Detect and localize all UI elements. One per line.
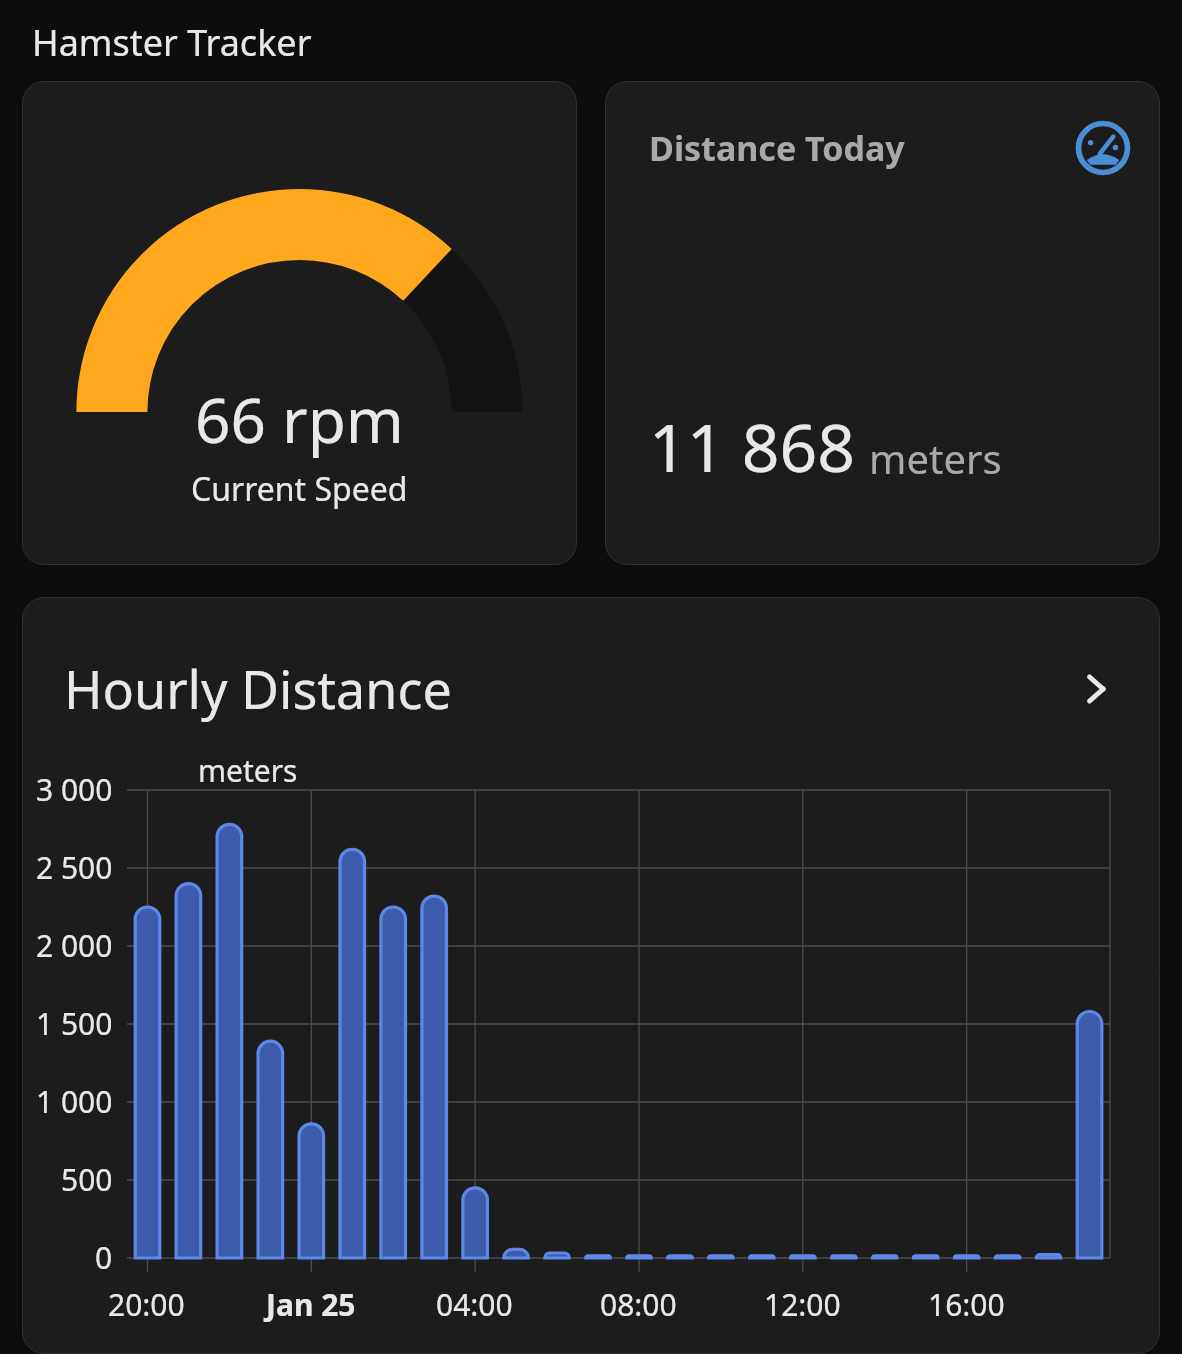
staticText: meters bbox=[869, 431, 1002, 485]
staticText: Current Speed bbox=[191, 467, 408, 511]
staticText: Distance Today bbox=[649, 125, 905, 171]
staticText: meters bbox=[198, 750, 298, 791]
staticText: 11 868 bbox=[649, 401, 855, 491]
other: Open details bbox=[1076, 669, 1116, 709]
staticText: 12:00 bbox=[764, 1284, 841, 1325]
staticText: Jan 25 bbox=[266, 1284, 356, 1325]
staticText: 500 bbox=[61, 1159, 113, 1200]
staticText: 04:00 bbox=[436, 1284, 513, 1325]
staticText: 20:00 bbox=[108, 1284, 185, 1325]
staticText: 2 500 bbox=[36, 847, 113, 888]
staticText: 1 500 bbox=[36, 1003, 113, 1044]
staticText: 2 000 bbox=[36, 925, 113, 966]
staticText: Hourly Distance bbox=[64, 653, 452, 724]
button[interactable]: 66 rpm bbox=[22, 81, 577, 565]
staticText: 16:00 bbox=[928, 1284, 1005, 1325]
staticText: 66 rpm bbox=[195, 377, 404, 461]
staticText: Hamster Tracker bbox=[32, 18, 312, 67]
staticText: 08:00 bbox=[600, 1284, 677, 1325]
button[interactable]: Hourly Distance bbox=[22, 597, 1160, 750]
staticText: 0 bbox=[95, 1237, 113, 1278]
other: Speedometer bbox=[1076, 121, 1130, 175]
button[interactable]: Distance Today bbox=[605, 81, 1160, 565]
staticText: 3 000 bbox=[36, 769, 113, 810]
staticText: 1 000 bbox=[36, 1081, 113, 1122]
